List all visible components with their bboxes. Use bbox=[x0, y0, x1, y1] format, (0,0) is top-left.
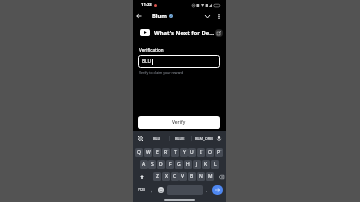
button[interactable]: Emoji bbox=[158, 185, 164, 195]
button[interactable]: A bbox=[140, 160, 148, 169]
button[interactable]: Voice input bbox=[215, 131, 222, 145]
button[interactable]: Open in browser bbox=[215, 29, 223, 37]
button[interactable]: BLU bbox=[146, 131, 168, 145]
button[interactable]: J bbox=[193, 160, 201, 169]
button[interactable]: B bbox=[188, 172, 196, 181]
staticText: N bbox=[199, 173, 203, 180]
button[interactable]: Verify bbox=[138, 116, 220, 129]
staticText: Verification bbox=[139, 47, 164, 53]
staticText: K bbox=[204, 161, 208, 168]
button[interactable]: Z bbox=[153, 172, 161, 181]
staticText: 11:23 bbox=[141, 2, 152, 8]
button[interactable]: C bbox=[171, 172, 179, 181]
button[interactable]: K bbox=[202, 160, 210, 169]
staticText: O bbox=[208, 149, 212, 156]
staticText: L bbox=[214, 161, 217, 168]
button[interactable]: S bbox=[148, 160, 156, 169]
button[interactable]: Shift bbox=[135, 172, 148, 181]
staticText: A bbox=[142, 161, 146, 168]
staticText: , bbox=[151, 187, 153, 193]
staticText: E bbox=[156, 149, 159, 156]
button[interactable]: I bbox=[197, 148, 205, 157]
staticText: Verify bbox=[172, 119, 186, 126]
staticText: T bbox=[174, 149, 177, 156]
staticText: M bbox=[208, 173, 213, 180]
staticText: BLUE bbox=[175, 136, 185, 141]
button[interactable]: , bbox=[148, 185, 155, 195]
button[interactable]: BLM_ORB bbox=[191, 131, 216, 145]
staticText: . bbox=[206, 187, 208, 193]
button[interactable]: D bbox=[157, 160, 165, 169]
staticText: W bbox=[146, 149, 151, 156]
staticText: BLU bbox=[153, 136, 161, 141]
staticText: R bbox=[164, 149, 168, 156]
button[interactable]: U bbox=[188, 148, 196, 157]
button[interactable]: BLUE bbox=[169, 131, 191, 145]
staticText: H bbox=[186, 161, 190, 168]
button[interactable]: P bbox=[215, 148, 223, 157]
button[interactable]: O bbox=[206, 148, 214, 157]
button[interactable]: . bbox=[204, 185, 210, 195]
staticText: F bbox=[169, 161, 172, 168]
staticText: J bbox=[196, 161, 198, 168]
staticText: BLU bbox=[142, 58, 152, 65]
staticText: 4 bbox=[167, 148, 169, 151]
button[interactable]: M bbox=[206, 172, 214, 181]
staticText: Verify to claim your reward bbox=[139, 70, 184, 75]
staticText: Q bbox=[137, 149, 141, 156]
staticText: 7 bbox=[193, 148, 195, 151]
staticText: V bbox=[181, 173, 185, 180]
staticText: Blum bbox=[152, 12, 168, 20]
staticText: 3 bbox=[158, 148, 160, 151]
button[interactable]: ?123 bbox=[135, 185, 148, 195]
staticText: D bbox=[159, 161, 163, 168]
staticText: What's Next for De... bbox=[154, 29, 215, 37]
staticText: 9 bbox=[211, 148, 213, 151]
staticText: 6 bbox=[185, 148, 187, 151]
staticText: B bbox=[190, 173, 194, 180]
button[interactable]: E bbox=[153, 148, 161, 157]
staticText: Y bbox=[183, 149, 186, 156]
staticText: 0 bbox=[220, 148, 222, 151]
button[interactable]: G bbox=[175, 160, 183, 169]
staticText: S bbox=[151, 161, 154, 168]
button[interactable]: X bbox=[162, 172, 170, 181]
staticText: C bbox=[173, 173, 177, 180]
button[interactable]: H bbox=[184, 160, 192, 169]
staticText: 1 bbox=[140, 148, 142, 151]
staticText: G bbox=[177, 161, 181, 168]
staticText: P bbox=[217, 149, 221, 156]
staticText: BLM_ORB bbox=[195, 136, 213, 141]
staticText: 2 bbox=[149, 148, 151, 151]
button[interactable]: N bbox=[197, 172, 205, 181]
button[interactable]: Backspace bbox=[215, 172, 228, 181]
button[interactable]: More options bbox=[213, 10, 225, 22]
staticText: ?123 bbox=[138, 188, 145, 192]
button[interactable]: W bbox=[144, 148, 152, 157]
staticText: Z bbox=[156, 173, 159, 180]
staticText: 8 bbox=[202, 148, 204, 151]
staticText: I bbox=[200, 149, 202, 156]
staticText: X bbox=[165, 173, 168, 180]
button[interactable]: Collapse bbox=[201, 10, 213, 22]
button[interactable]: T bbox=[171, 148, 179, 157]
button[interactable]: L bbox=[211, 160, 219, 169]
button[interactable]: V bbox=[179, 172, 187, 181]
staticText: 5 bbox=[176, 148, 178, 151]
button[interactable]: BLU bbox=[138, 55, 220, 68]
staticText: U bbox=[190, 149, 194, 156]
button[interactable]: Back bbox=[133, 10, 145, 22]
button[interactable]: Q bbox=[135, 148, 143, 157]
button[interactable]: Y bbox=[180, 148, 188, 157]
button[interactable]: Enter bbox=[212, 185, 223, 195]
button[interactable]: Keyboard settings bbox=[137, 131, 144, 145]
button[interactable]: F bbox=[166, 160, 174, 169]
button[interactable]: R bbox=[162, 148, 170, 157]
